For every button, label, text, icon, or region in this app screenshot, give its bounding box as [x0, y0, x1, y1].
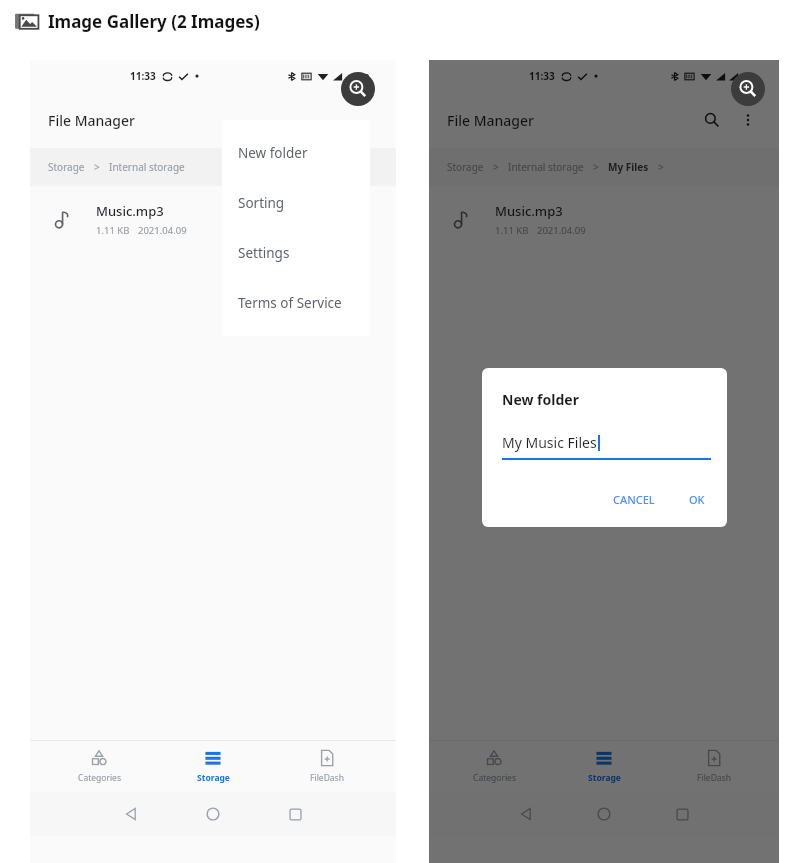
- staticText: Image Gallery (2 Images): [48, 10, 260, 33]
- staticText: Categories: [78, 772, 121, 784]
- staticText: File Manager: [447, 111, 534, 130]
- staticText: FileDash: [310, 772, 344, 784]
- button[interactable]: Recent apps: [665, 797, 699, 831]
- button[interactable]: New folder: [222, 128, 370, 178]
- staticText: 1.11 KB: [96, 224, 130, 237]
- staticText: FileDash: [697, 772, 731, 784]
- button[interactable]: Zoom image: [731, 72, 765, 106]
- staticText: 11:33: [130, 69, 156, 83]
- staticText: 1.11 KB: [495, 224, 529, 237]
- button[interactable]: Search: [697, 105, 727, 135]
- button[interactable]: Home: [587, 797, 621, 831]
- button[interactable]: CANCEL: [607, 488, 661, 511]
- staticText: >: [593, 160, 599, 174]
- button[interactable]: Sorting: [222, 178, 370, 228]
- staticText: Storage: [197, 772, 230, 784]
- staticText: >: [493, 160, 499, 174]
- staticText: Categories: [473, 772, 516, 784]
- staticText: My Music Files: [502, 433, 597, 452]
- staticText: Terms of Service: [238, 294, 342, 312]
- staticText: Music.mp3: [495, 202, 563, 220]
- button[interactable]: FileDash: [282, 740, 372, 792]
- button[interactable]: Categories: [449, 740, 539, 792]
- staticText: Settings: [238, 244, 290, 262]
- button[interactable]: Back: [114, 797, 148, 831]
- staticText: New folder: [238, 144, 308, 162]
- staticText: Storage: [588, 772, 621, 784]
- staticText: CANCEL: [613, 492, 655, 507]
- staticText: New folder: [502, 390, 579, 409]
- button[interactable]: Storage: [168, 740, 258, 792]
- button[interactable]: Categories: [54, 740, 144, 792]
- button[interactable]: More options: [735, 107, 761, 133]
- button[interactable]: Zoom image: [341, 72, 375, 106]
- staticText: >: [658, 160, 664, 174]
- button[interactable]: FileDash: [669, 740, 759, 792]
- button[interactable]: Music.mp3: [30, 186, 396, 252]
- button[interactable]: OK: [683, 488, 711, 511]
- button[interactable]: My Files: [608, 160, 649, 174]
- staticText: 11:33: [529, 69, 555, 83]
- button[interactable]: Storage: [48, 160, 85, 174]
- button[interactable]: Internal storage: [109, 160, 185, 174]
- staticText: 2021.04.09: [537, 224, 586, 237]
- button[interactable]: Home: [196, 797, 230, 831]
- staticText: File Manager: [48, 111, 135, 130]
- staticText: 2021.04.09: [138, 224, 187, 237]
- button[interactable]: Back: [509, 797, 543, 831]
- staticText: 50: [359, 70, 370, 82]
- button[interactable]: Terms of Service: [222, 278, 370, 328]
- button[interactable]: Recent apps: [278, 797, 312, 831]
- button[interactable]: Music.mp3: [429, 186, 779, 252]
- button[interactable]: Internal storage: [508, 160, 584, 174]
- button[interactable]: Storage: [447, 160, 484, 174]
- staticText: Sorting: [238, 194, 285, 212]
- button[interactable]: Storage: [559, 740, 649, 792]
- staticText: 50: [742, 70, 753, 82]
- button[interactable]: Settings: [222, 228, 370, 278]
- staticText: Music.mp3: [96, 202, 164, 220]
- staticText: OK: [689, 492, 705, 507]
- staticText: >: [94, 160, 100, 174]
